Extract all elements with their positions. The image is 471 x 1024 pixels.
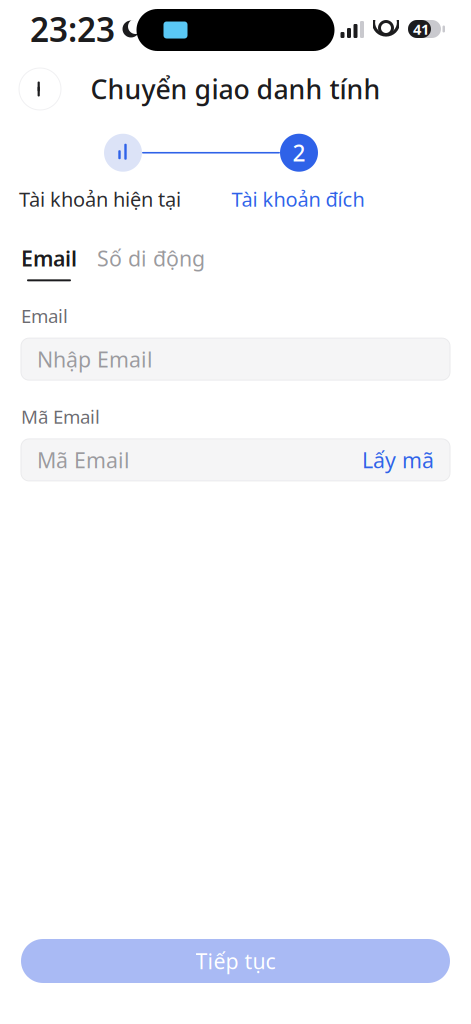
staticText: Tiếp tục [195, 947, 275, 975]
staticText: Email [21, 244, 77, 272]
staticText: Tài khoản hiện tại [19, 186, 181, 212]
staticText: 41 [413, 19, 429, 39]
button[interactable]: Email [21, 244, 77, 281]
staticText: 23:23 [30, 7, 115, 51]
staticText: Mã Email [37, 446, 130, 474]
button[interactable]: Tiếp tục [21, 939, 450, 983]
staticText: Chuyển giao danh tính [90, 71, 380, 107]
button[interactable]: Back [19, 68, 61, 110]
staticText: Lấy mã [362, 446, 434, 474]
staticText: Số di động [97, 244, 205, 272]
staticText: Email [21, 303, 68, 328]
staticText: Mã Email [21, 404, 100, 429]
staticText: Tài khoản đích [231, 186, 364, 212]
button[interactable]: Lấy mã [362, 446, 434, 474]
staticText: Nhập Email [37, 345, 153, 373]
staticText: 2 [292, 138, 305, 168]
button[interactable]: Số di động [97, 244, 205, 281]
